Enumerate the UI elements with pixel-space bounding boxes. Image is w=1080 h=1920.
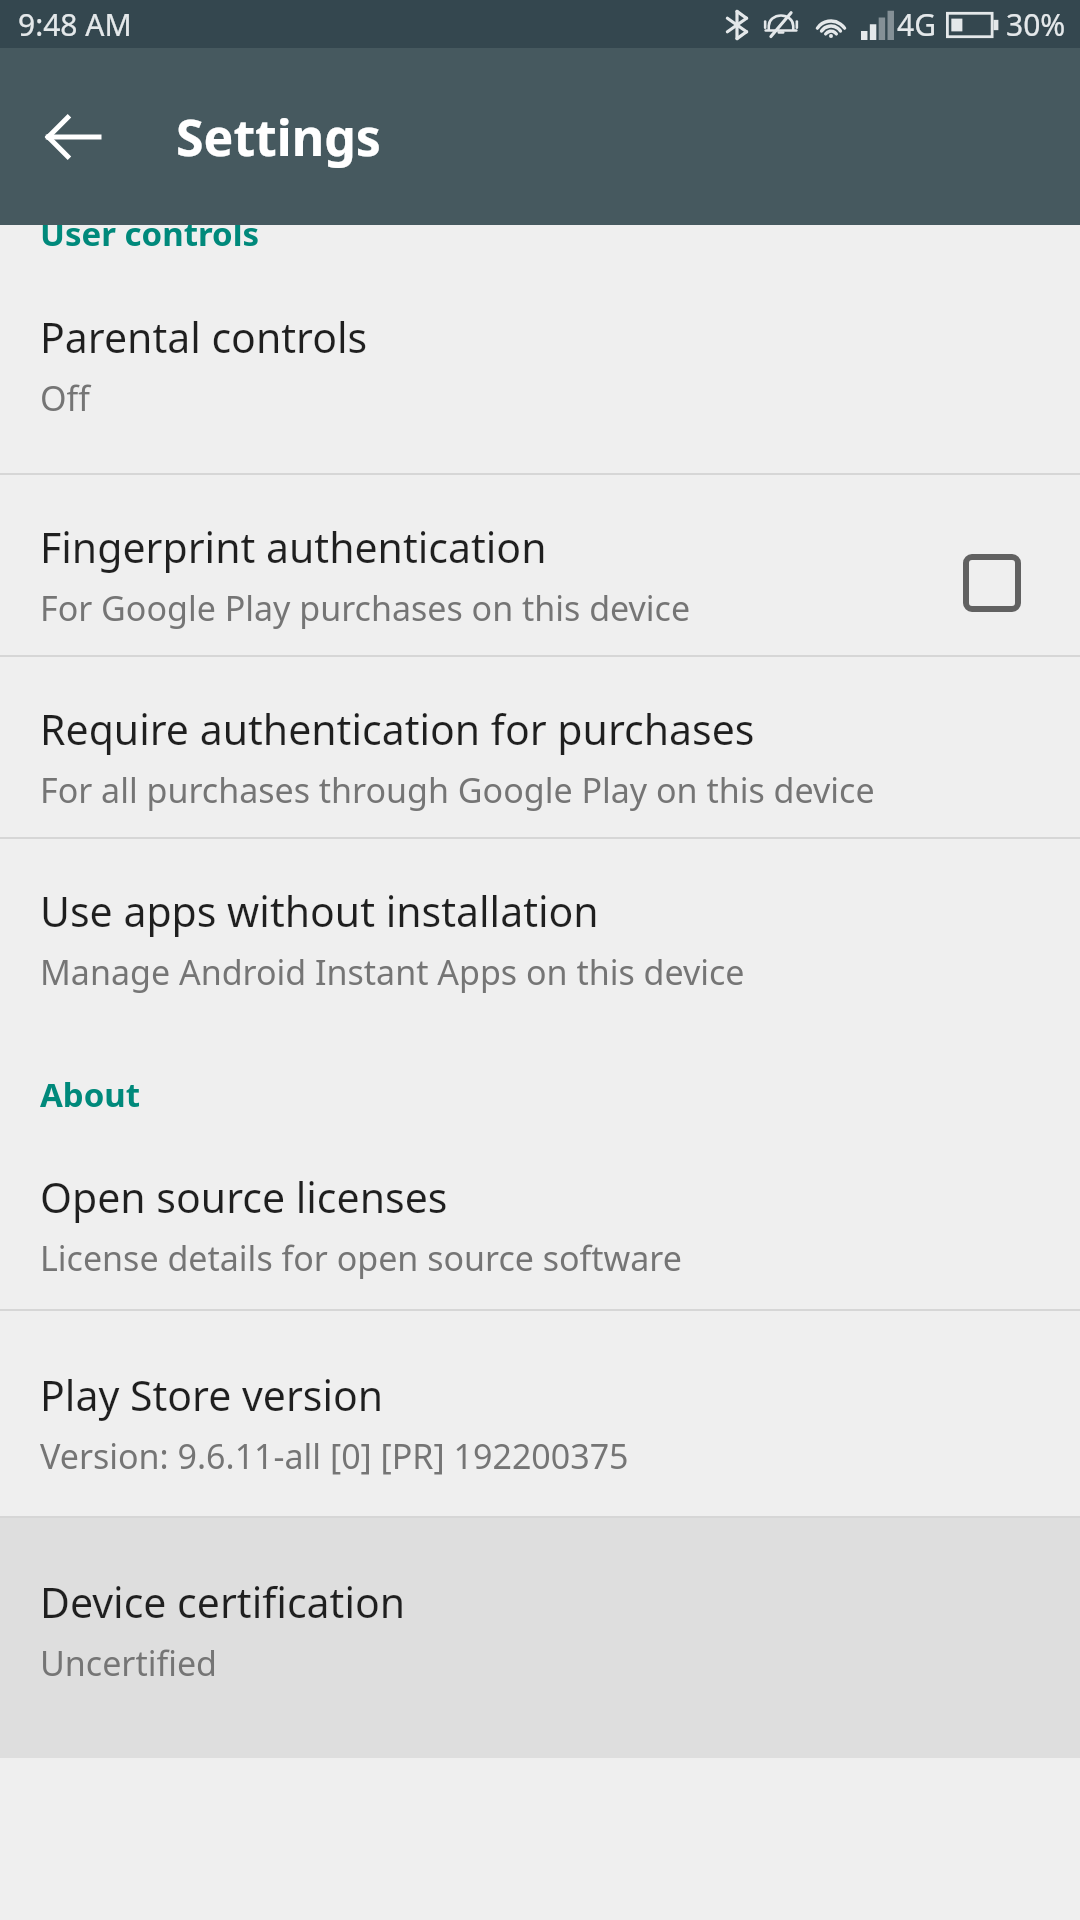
staticText: Manage Android Instant Apps on this devi… xyxy=(40,949,745,995)
button[interactable]: Open source licenses xyxy=(0,1129,1080,1309)
staticText: 9:48 AM xyxy=(18,4,132,45)
staticText: Off xyxy=(40,375,90,421)
button[interactable]: Back xyxy=(24,89,120,185)
staticText: License details for open source software xyxy=(40,1235,682,1281)
button[interactable]: Fingerprint authentication toggle xyxy=(944,535,1040,631)
staticText: For all purchases through Google Play on… xyxy=(40,767,875,813)
staticText: Fingerprint authentication xyxy=(40,519,547,575)
button[interactable]: Parental controls xyxy=(0,265,1080,473)
staticText: 30% xyxy=(1006,4,1066,45)
button[interactable]: Require authentication for purchases xyxy=(0,657,1080,837)
staticText: Uncertified xyxy=(40,1640,218,1686)
staticText: Version: 9.6.11-all [0] [PR] 192200375 xyxy=(40,1433,629,1479)
button[interactable]: Fingerprint authentication xyxy=(0,475,1080,655)
staticText: Settings xyxy=(176,103,381,171)
button[interactable]: Device certification xyxy=(0,1518,1080,1758)
staticText: Open source licenses xyxy=(40,1169,448,1225)
staticText: Play Store version xyxy=(40,1367,384,1423)
button[interactable]: Play Store version xyxy=(0,1311,1080,1516)
staticText: Parental controls xyxy=(40,309,368,365)
staticText: Require authentication for purchases xyxy=(40,701,755,757)
staticText: For Google Play purchases on this device xyxy=(40,585,691,631)
staticText: Device certification xyxy=(40,1574,406,1630)
staticText: About xyxy=(40,1072,141,1117)
staticText: Use apps without installation xyxy=(40,883,599,939)
staticText: 4G xyxy=(897,4,936,45)
button[interactable]: Use apps without installation xyxy=(0,839,1080,1021)
staticText: User controls xyxy=(40,225,260,251)
